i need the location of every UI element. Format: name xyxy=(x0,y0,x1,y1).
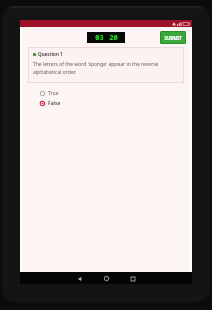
button[interactable]: Recent apps xyxy=(127,273,138,284)
button[interactable]: Home xyxy=(101,273,112,284)
button[interactable]: 03 xyxy=(87,32,125,43)
staticText: 20 xyxy=(109,33,118,43)
staticText: True xyxy=(48,90,59,97)
button[interactable]: True xyxy=(40,90,184,97)
button[interactable]: Back xyxy=(74,273,85,284)
staticText: 03 xyxy=(95,33,104,43)
staticText: False xyxy=(48,100,61,107)
staticText: SUBMIT xyxy=(164,35,182,41)
staticText: The letters of the word 'sponge' appear … xyxy=(33,61,179,76)
button[interactable]: SUBMIT xyxy=(160,31,186,44)
button[interactable]: False xyxy=(40,100,184,107)
staticText: Question 1 xyxy=(38,51,63,57)
